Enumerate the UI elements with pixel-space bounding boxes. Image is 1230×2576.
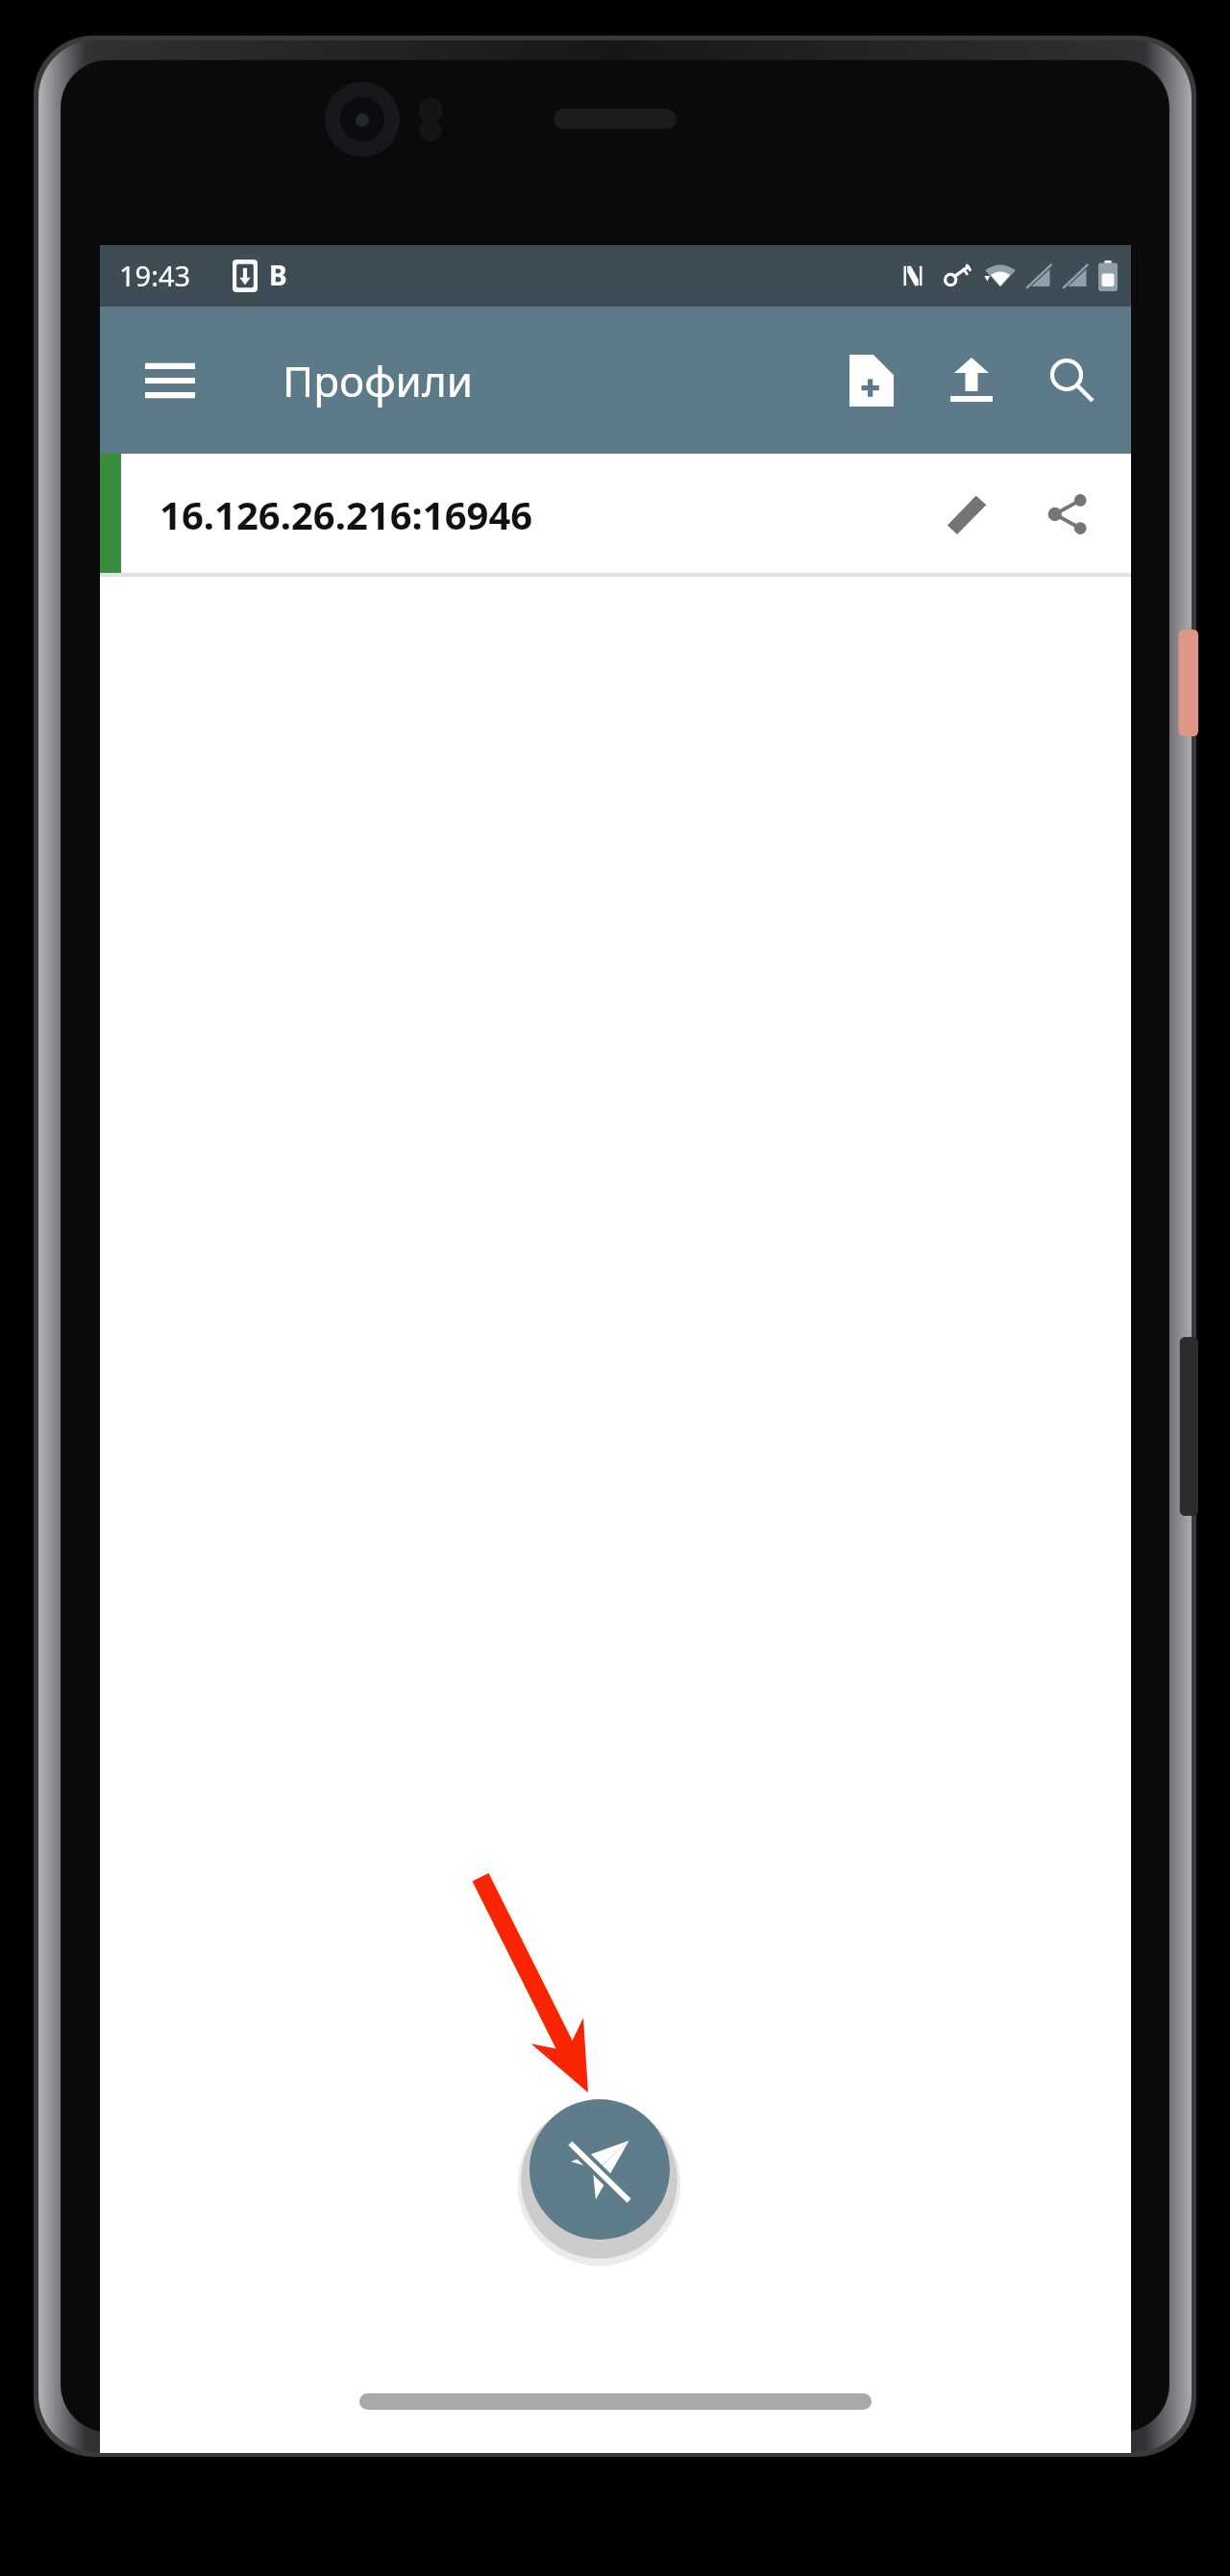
staticText: 16.126.26.216:16946 [160,488,533,540]
button[interactable]: Search [1021,331,1121,431]
button[interactable]: New profile [822,331,922,431]
button[interactable]: Open navigation drawer [121,332,219,430]
button[interactable]: Import [922,331,1021,431]
staticText: 19:43 [119,257,191,294]
button[interactable]: Disconnect [529,2099,670,2240]
staticText: B [269,257,287,293]
button[interactable]: Share profile [1018,464,1118,564]
staticText: Профили [283,352,474,409]
button[interactable]: 16.126.26.216:16946 [100,454,1131,575]
button[interactable]: Edit profile [918,464,1018,564]
